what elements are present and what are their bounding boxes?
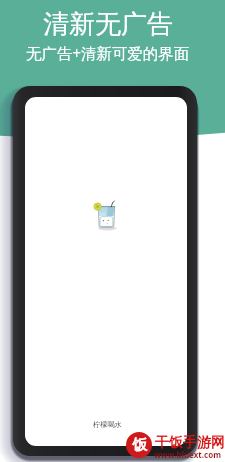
staticText: 无广告+清新可爱的界面 [26, 43, 189, 64]
button[interactable]: 柠檬喝水 [25, 97, 187, 446]
staticText: 柠檬喝水 [93, 420, 122, 429]
staticText: www.bluext.com [154, 449, 221, 460]
staticText: 清新无广告 [43, 8, 173, 41]
other: Site logo [126, 432, 152, 458]
button[interactable]: 柠檬喝水 [93, 420, 122, 429]
staticText: 饭 [132, 436, 147, 455]
staticText: 干饭手游网 [155, 434, 225, 452]
